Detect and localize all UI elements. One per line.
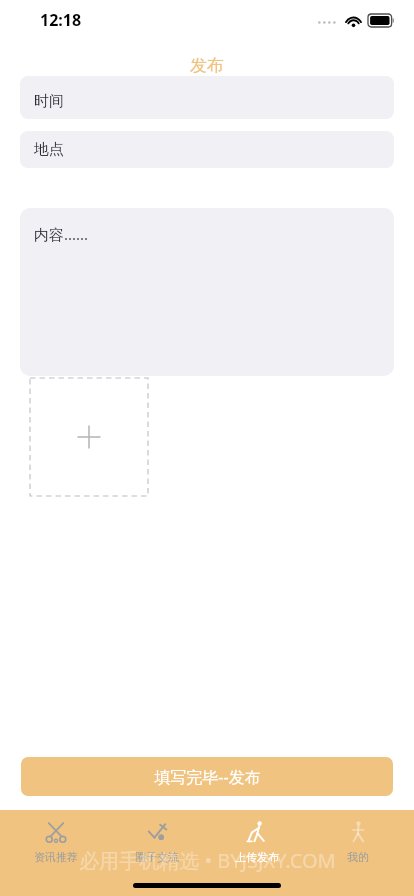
- staticText: 发布: [190, 55, 224, 76]
- staticText: 上传发布: [235, 850, 279, 864]
- button[interactable]: 资讯推荐: [11, 819, 101, 864]
- button[interactable]: 内容......: [20, 208, 394, 376]
- button[interactable]: 我的: [313, 819, 403, 864]
- button[interactable]: Add photo: [30, 378, 148, 496]
- staticText: 圈子交流: [135, 850, 179, 864]
- staticText: 必用手机精选 • BYJSJXY.COM: [79, 847, 336, 874]
- staticText: 资讯推荐: [34, 850, 78, 864]
- button[interactable]: 地点: [20, 131, 394, 168]
- button[interactable]: 上传发布: [212, 819, 302, 864]
- staticText: 填写完毕--发布: [154, 766, 261, 788]
- staticText: 内容......: [34, 224, 89, 244]
- button[interactable]: 填写完毕--发布: [21, 757, 393, 796]
- staticText: 12:18: [40, 9, 82, 31]
- staticText: 地点: [34, 140, 64, 159]
- button[interactable]: 圈子交流: [112, 819, 202, 864]
- button[interactable]: 时间: [20, 76, 394, 119]
- staticText: 我的: [347, 850, 369, 864]
- staticText: 时间: [34, 92, 64, 111]
